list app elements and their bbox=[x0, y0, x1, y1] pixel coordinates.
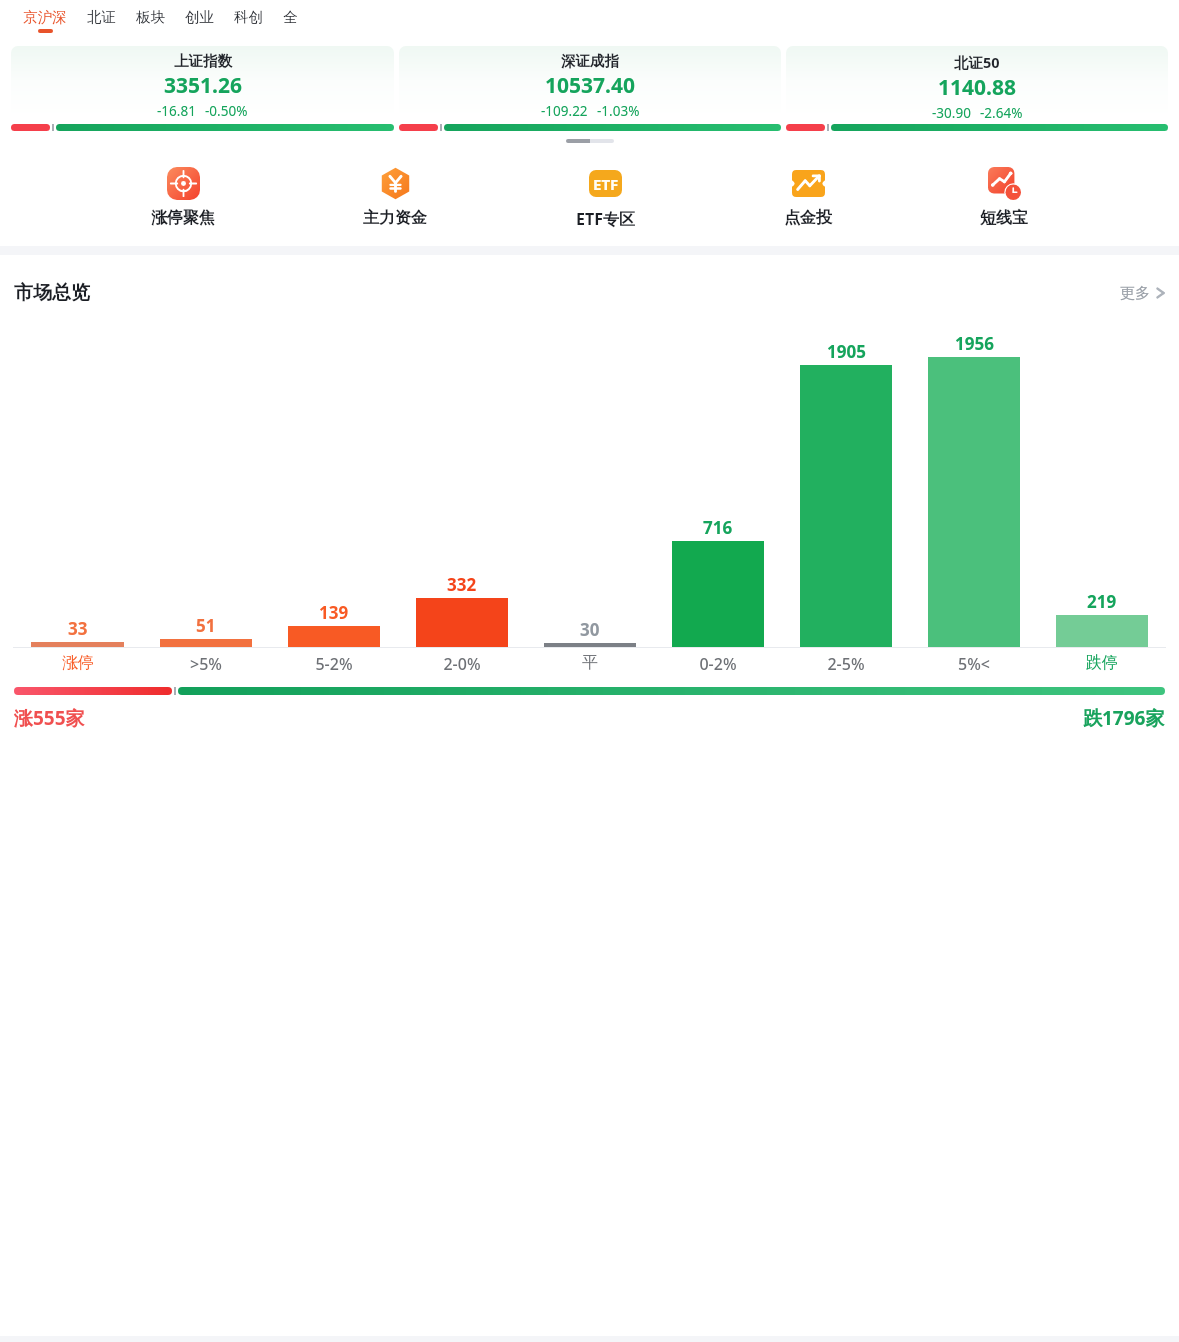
button[interactable]: 全 bbox=[273, 8, 308, 33]
button[interactable]: 33 bbox=[13, 617, 142, 647]
other: 短线宝 bbox=[988, 167, 1021, 200]
button[interactable]: 332 bbox=[398, 573, 526, 647]
staticText: 0-2% bbox=[699, 653, 737, 675]
button[interactable]: 1905 bbox=[782, 340, 910, 647]
staticText: 5%< bbox=[958, 653, 990, 675]
staticText: 跌停 bbox=[1086, 653, 1118, 673]
staticText: 板块 bbox=[136, 8, 165, 26]
other: 点金投 bbox=[792, 167, 825, 200]
staticText: 北证 bbox=[87, 8, 116, 26]
staticText: 219 bbox=[1087, 590, 1117, 613]
staticText: 短线宝 bbox=[980, 208, 1028, 228]
button[interactable]: 716 bbox=[654, 516, 782, 647]
staticText: 创业 bbox=[185, 8, 214, 26]
button[interactable]: 创业 bbox=[175, 8, 224, 33]
other: 涨停聚焦 bbox=[167, 167, 200, 200]
staticText: 京沪深 bbox=[23, 8, 67, 26]
staticText: -0.50% bbox=[205, 102, 248, 118]
button[interactable]: 51 bbox=[142, 614, 270, 647]
staticText: 深证成指 bbox=[561, 52, 619, 70]
staticText: 平 bbox=[582, 653, 598, 673]
staticText: 点金投 bbox=[784, 208, 832, 228]
button[interactable]: 1956 bbox=[910, 332, 1038, 647]
button[interactable]: 市场总览 bbox=[0, 269, 1179, 317]
button[interactable]: 主力资金 bbox=[359, 167, 431, 228]
staticText: 51 bbox=[196, 614, 216, 637]
staticText: 33 bbox=[68, 617, 88, 640]
other: ETF专区 bbox=[589, 170, 622, 197]
staticText: 全 bbox=[283, 8, 298, 26]
button[interactable]: 上证指数 bbox=[11, 46, 394, 131]
staticText: 更多 bbox=[1120, 284, 1150, 303]
staticText: -2.64% bbox=[980, 104, 1023, 118]
staticText: 139 bbox=[319, 601, 349, 624]
button[interactable]: 点金投 bbox=[780, 167, 836, 228]
staticText: 2-5% bbox=[827, 653, 865, 675]
staticText: 跌1796家 bbox=[1083, 705, 1165, 731]
staticText: -1.03% bbox=[597, 102, 640, 118]
button[interactable]: 139 bbox=[270, 601, 398, 647]
staticText: 332 bbox=[447, 573, 477, 596]
staticText: 3351.26 bbox=[164, 71, 242, 100]
staticText: ETF专区 bbox=[576, 208, 635, 230]
staticText: 30 bbox=[580, 618, 600, 641]
staticText: -109.22 bbox=[541, 102, 588, 118]
staticText: -30.90 bbox=[932, 104, 971, 118]
button[interactable]: 北证 bbox=[77, 8, 126, 33]
staticText: 涨停聚焦 bbox=[151, 208, 215, 228]
button[interactable]: ETF专区 bbox=[572, 167, 639, 230]
staticText: 涨555家 bbox=[14, 705, 85, 731]
staticText: ETF bbox=[593, 174, 619, 194]
button[interactable]: 北证50 bbox=[786, 46, 1168, 131]
button[interactable]: 板块 bbox=[126, 8, 175, 33]
button[interactable]: 219 bbox=[1038, 590, 1166, 647]
staticText: >5% bbox=[190, 653, 222, 675]
button[interactable]: 涨停聚焦 bbox=[147, 167, 219, 228]
staticText: 1905 bbox=[827, 340, 866, 363]
staticText: 上证指数 bbox=[174, 52, 232, 70]
staticText: 2-0% bbox=[443, 653, 481, 675]
staticText: -16.81 bbox=[157, 102, 196, 118]
staticText: 5-2% bbox=[315, 653, 353, 675]
button[interactable]: 京沪深 bbox=[13, 8, 77, 33]
staticText: 1956 bbox=[955, 332, 994, 355]
button[interactable]: 短线宝 bbox=[976, 167, 1032, 228]
staticText: 北证50 bbox=[954, 52, 1000, 72]
staticText: 1140.88 bbox=[938, 73, 1016, 102]
staticText: 716 bbox=[703, 516, 733, 539]
button[interactable]: 科创 bbox=[224, 8, 273, 33]
staticText: 市场总览 bbox=[14, 281, 90, 305]
staticText: 涨停 bbox=[62, 653, 94, 673]
button[interactable]: 深证成指 bbox=[399, 46, 781, 131]
staticText: 科创 bbox=[234, 8, 263, 26]
button[interactable]: 30 bbox=[526, 618, 654, 647]
other: 主力资金 bbox=[379, 167, 412, 200]
staticText: 主力资金 bbox=[363, 208, 427, 228]
staticText: 10537.40 bbox=[545, 71, 635, 100]
